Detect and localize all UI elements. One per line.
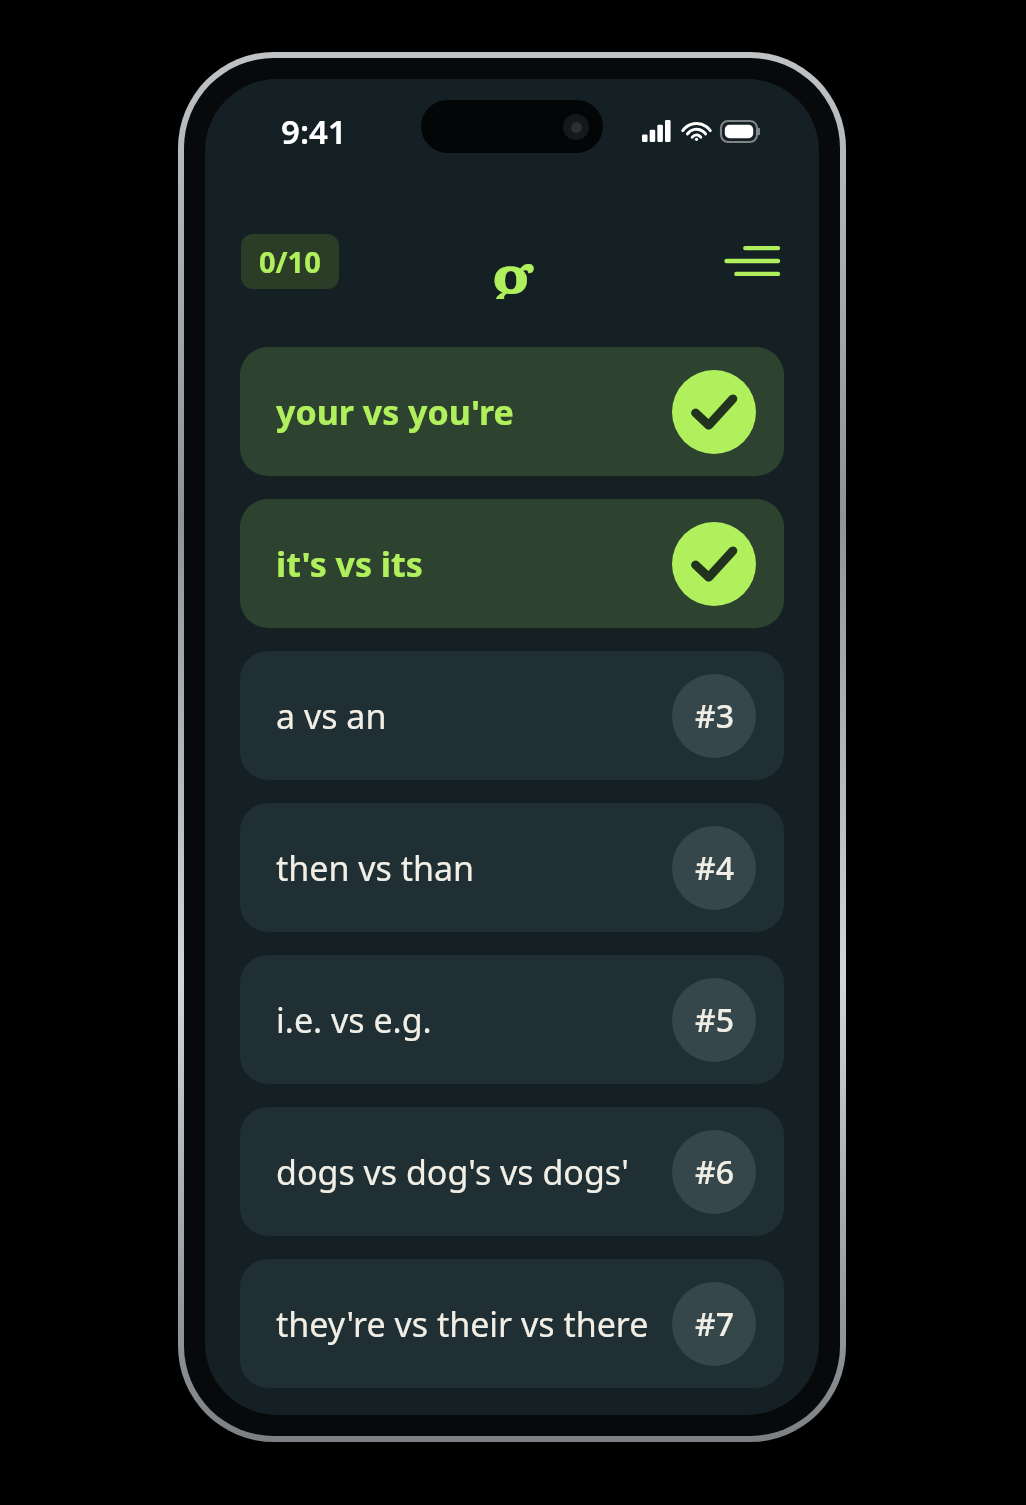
button[interactable]: i.e. vs e.g. [240,955,784,1084]
staticText: 0/10 [259,242,321,281]
staticText: it's vs its [276,541,660,587]
staticText: #3 [695,694,734,738]
staticText: #7 [695,1302,734,1346]
button[interactable]: 0/10 [241,234,339,289]
staticText: dogs vs dog's vs dogs' [276,1149,660,1195]
staticText: g [491,227,534,299]
button[interactable]: then vs than [240,803,784,932]
staticText: #4 [695,846,734,890]
button[interactable]: Menu [721,230,783,292]
staticText: then vs than [276,845,660,891]
staticText: i.e. vs e.g. [276,997,660,1043]
button[interactable]: dogs vs dog's vs dogs' [240,1107,784,1236]
staticText: they're vs their vs there [276,1301,660,1347]
button[interactable]: Grammarly home [479,227,546,299]
staticText: your vs you're [276,389,660,435]
staticText: 9:41 [281,109,347,154]
button[interactable]: your vs you're [240,347,784,476]
staticText: #6 [695,1150,734,1194]
button[interactable]: they're vs their vs there [240,1259,784,1388]
button[interactable]: it's vs its [240,499,784,628]
button[interactable]: a vs an [240,651,784,780]
staticText: a vs an [276,693,660,739]
staticText: #5 [695,998,734,1042]
